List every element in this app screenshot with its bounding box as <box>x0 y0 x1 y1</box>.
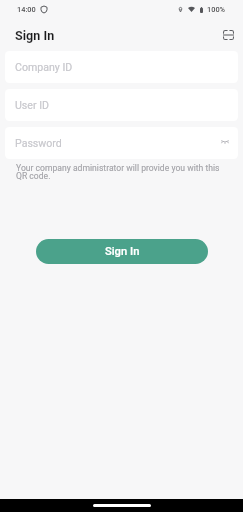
staticText: Password <box>15 137 62 149</box>
button[interactable]: Password <box>5 127 238 159</box>
staticText: 100% <box>207 5 226 14</box>
staticText: User ID <box>15 99 50 111</box>
button[interactable]: Scan QR code <box>218 25 238 45</box>
staticText: Sign In <box>15 28 55 43</box>
staticText: Your company administrator will provide … <box>16 163 223 182</box>
staticText: 14:00 <box>17 5 36 14</box>
staticText: Sign In <box>105 245 140 258</box>
button[interactable]: User ID <box>5 89 238 121</box>
staticText: Company ID <box>15 61 73 73</box>
button[interactable]: Sign In <box>36 239 208 264</box>
other: Show password <box>221 140 229 144</box>
button[interactable]: Company ID <box>5 51 238 83</box>
